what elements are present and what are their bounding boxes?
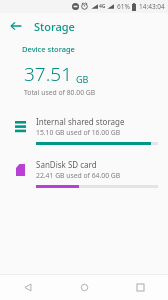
- staticText: SanDisk SD card: [36, 159, 97, 170]
- button[interactable]: Home: [56, 275, 112, 300]
- staticText: Internal shared storage: [36, 116, 125, 127]
- staticText: 22.41 GB used of 64.00 GB: [36, 171, 121, 180]
- button[interactable]: Back: [6, 16, 26, 36]
- button[interactable]: Internal shared storage: [0, 108, 168, 151]
- staticText: Total used of 80.00 GB: [24, 88, 96, 97]
- button[interactable]: Recent apps: [112, 275, 168, 300]
- staticText: Device storage: [22, 44, 75, 54]
- staticText: Storage: [34, 19, 75, 34]
- staticText: GB: [76, 73, 89, 85]
- button[interactable]: Back: [0, 275, 56, 300]
- button[interactable]: SanDisk SD card: [0, 151, 168, 194]
- staticText: 61%: [117, 2, 130, 11]
- staticText: 15.10 GB used of 16.00 GB: [36, 128, 121, 137]
- staticText: 14:43:04: [139, 2, 165, 11]
- staticText: 37.51: [24, 61, 73, 87]
- staticText: 4G: [99, 3, 106, 10]
